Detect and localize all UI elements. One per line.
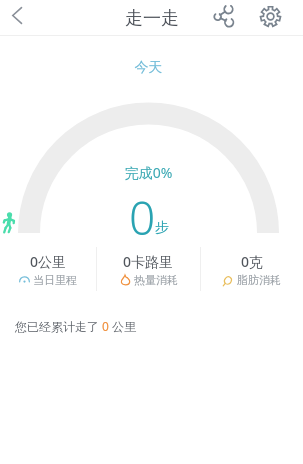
- staticText: 脂肪消耗: [237, 273, 281, 287]
- button[interactable]: 0克: [201, 247, 303, 287]
- staticText: 当日里程: [33, 273, 77, 287]
- button[interactable]: Back: [1, 0, 32, 31]
- button[interactable]: 0卡路里: [97, 247, 200, 287]
- button[interactable]: 0公里: [0, 247, 96, 287]
- staticText: 今天: [0, 59, 300, 77]
- button[interactable]: Settings: [254, 0, 287, 33]
- staticText: 0公里: [30, 252, 67, 271]
- staticText: 走一走: [125, 7, 179, 30]
- staticText: 0克: [241, 252, 264, 271]
- staticText: 步: [155, 219, 169, 237]
- staticText: 热量消耗: [134, 273, 178, 287]
- staticText: 0卡路里: [123, 252, 174, 271]
- staticText: 0: [129, 186, 156, 249]
- staticText: 完成0%: [0, 163, 300, 182]
- staticText: 您已经累计走了 0 公里: [15, 318, 137, 334]
- button[interactable]: Share: [206, 0, 239, 31]
